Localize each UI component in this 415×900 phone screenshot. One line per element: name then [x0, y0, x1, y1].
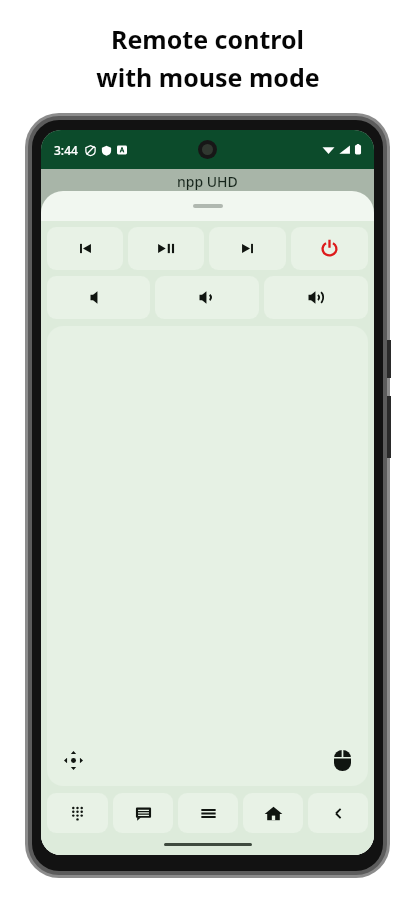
staticText: with mouse mode	[96, 60, 320, 94]
staticText: Remote control	[111, 22, 304, 56]
staticText: npp UHD	[177, 172, 238, 191]
button[interactable]: Play pause	[128, 227, 204, 270]
button[interactable]: Volume down	[155, 276, 259, 319]
button[interactable]: Touchpad	[47, 326, 368, 786]
button[interactable]: Home	[243, 793, 303, 833]
button[interactable]: Next	[209, 227, 286, 270]
button[interactable]: Mouse mode	[328, 746, 356, 774]
button[interactable]: Back	[308, 793, 368, 833]
button[interactable]: Previous	[47, 227, 123, 270]
button[interactable]: Dialpad	[47, 793, 108, 833]
button[interactable]: Keyboard	[113, 793, 173, 833]
button[interactable]: Menu	[178, 793, 238, 833]
button[interactable]: Mute	[47, 276, 150, 319]
staticText: 3:44	[54, 142, 78, 158]
button[interactable]: Power	[291, 227, 368, 270]
button[interactable]: D-pad mode	[59, 746, 87, 774]
button[interactable]: Volume up	[264, 276, 368, 319]
